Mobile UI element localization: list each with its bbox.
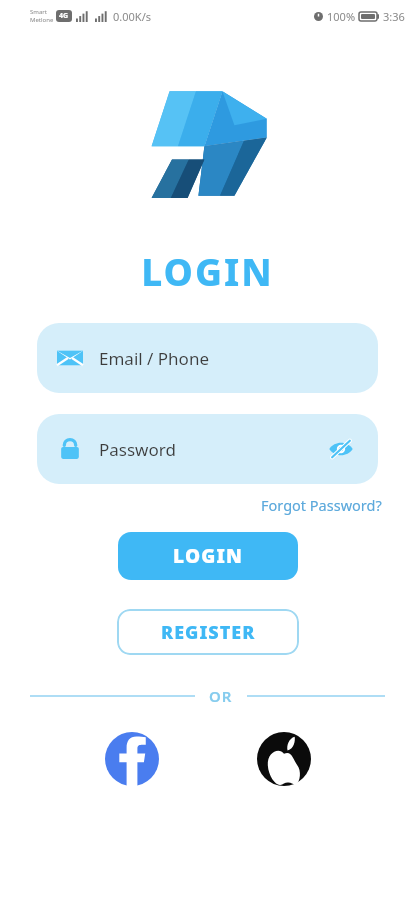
staticText: 100% (327, 9, 356, 24)
button[interactable]: Password (37, 414, 378, 484)
staticText: 4G (59, 11, 69, 21)
staticText: Smart (30, 8, 47, 16)
button[interactable]: LOGIN (118, 532, 298, 580)
staticText: Email / Phone (99, 347, 209, 370)
staticText: LOGIN (173, 543, 244, 569)
button[interactable]: REGISTER (117, 609, 299, 655)
button[interactable]: Sign in with Facebook (102, 729, 162, 789)
staticText: Forgot Password? (261, 495, 382, 515)
staticText: Metlone (30, 16, 54, 24)
staticText: OR (209, 686, 233, 706)
staticText: Password (99, 438, 176, 461)
staticText: REGISTER (161, 620, 256, 645)
button[interactable]: Show password (324, 432, 358, 466)
staticText: 3:36 (383, 9, 405, 24)
button[interactable]: Sign in with Apple (254, 729, 314, 789)
button[interactable]: Forgot Password? (258, 491, 385, 519)
staticText: LOGIN (0, 246, 415, 296)
button[interactable]: Email / Phone (37, 323, 378, 393)
staticText: 0.00K/s (113, 9, 151, 24)
